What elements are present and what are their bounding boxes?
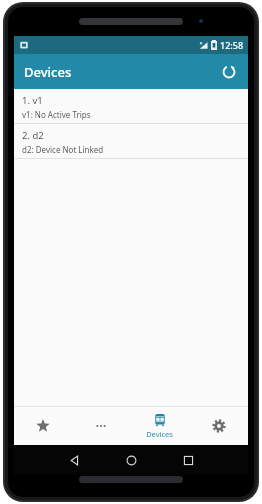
button[interactable]: Home — [103, 445, 160, 475]
staticText: d2: Device Not Linked — [22, 144, 104, 155]
button[interactable]: Favorites — [14, 407, 72, 445]
button[interactable]: Back — [46, 445, 103, 475]
staticText: 2. d2 — [22, 129, 44, 142]
button[interactable]: Devices — [130, 407, 189, 445]
button[interactable]: 1. v1 — [14, 89, 248, 123]
button[interactable]: Refresh — [214, 57, 244, 87]
staticText: Devices — [146, 429, 173, 439]
staticText: 1. v1 — [22, 94, 43, 107]
button[interactable]: More — [72, 407, 130, 445]
button[interactable]: 2. d2 — [14, 124, 248, 158]
staticText: 12:58 — [220, 39, 244, 51]
button[interactable]: Recents — [160, 445, 217, 475]
button[interactable]: Settings — [189, 407, 248, 445]
staticText: v1: No Active Trips — [22, 109, 91, 120]
staticText: Devices — [24, 63, 72, 81]
